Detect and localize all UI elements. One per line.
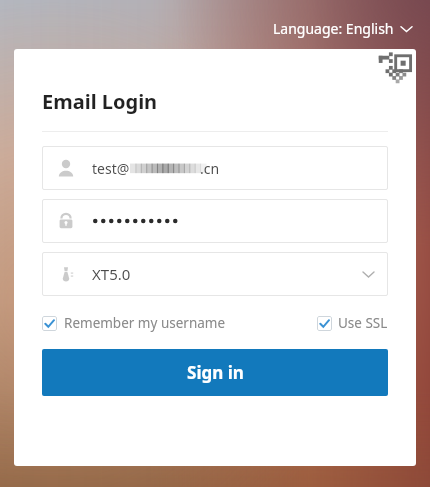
staticText: Remember my username <box>64 314 226 332</box>
staticText: Language: English <box>273 19 394 38</box>
button[interactable]: test@ <box>42 146 388 190</box>
staticText: test@ <box>92 159 130 178</box>
button[interactable]: Language: English <box>269 17 416 40</box>
staticText: .cn <box>200 159 220 178</box>
button[interactable]: XT5.0 <box>42 252 388 296</box>
button[interactable]: Remember my username <box>42 311 226 335</box>
button[interactable] <box>42 199 388 243</box>
staticText: XT5.0 <box>92 264 131 284</box>
button[interactable]: Sign in <box>42 349 388 396</box>
staticText: Email Login <box>42 88 158 115</box>
staticText: Use SSL <box>338 314 388 332</box>
button[interactable]: Use SSL <box>317 311 388 335</box>
button[interactable]: Scan QR code to log in <box>372 49 416 93</box>
staticText: Sign in <box>187 361 244 384</box>
